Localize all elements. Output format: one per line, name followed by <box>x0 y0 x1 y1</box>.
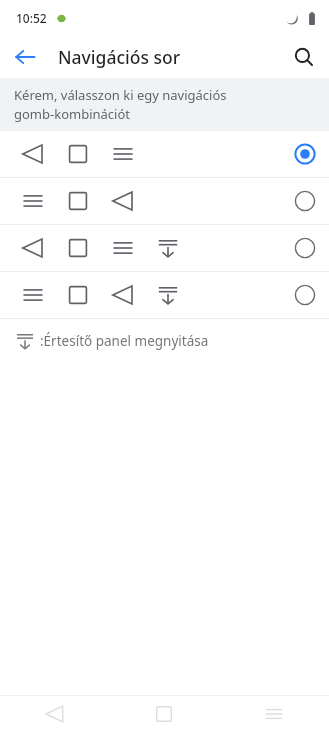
staticText: :Értesítő panel megnyitása <box>40 332 209 350</box>
staticText: 10:52 <box>16 10 47 26</box>
staticText: Kérem, válasszon ki egy navigációs gomb-… <box>14 86 227 123</box>
button[interactable] <box>0 225 329 272</box>
button[interactable]: Recents <box>219 696 329 731</box>
button[interactable]: Back <box>0 696 109 731</box>
button[interactable]: Back <box>6 38 44 76</box>
button[interactable] <box>0 131 329 178</box>
button[interactable] <box>0 178 329 225</box>
button[interactable]: Search <box>285 38 323 76</box>
button[interactable] <box>0 272 329 319</box>
button[interactable]: Home <box>109 696 219 731</box>
staticText: Navigációs sor <box>58 45 181 69</box>
